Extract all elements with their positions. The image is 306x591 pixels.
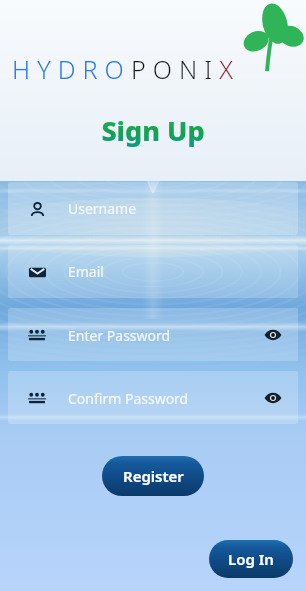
button[interactable]: Enter Password bbox=[8, 308, 298, 361]
staticText: Email bbox=[68, 262, 104, 281]
button[interactable]: Confirm Password bbox=[8, 371, 298, 424]
button[interactable]: Username bbox=[8, 182, 298, 235]
staticText: Sign Up bbox=[101, 112, 205, 149]
button[interactable]: Toggle password visibility bbox=[262, 324, 284, 346]
staticText: Username bbox=[68, 199, 137, 218]
staticText: Register bbox=[123, 466, 184, 486]
staticText: Enter Password bbox=[68, 326, 171, 345]
button[interactable]: Toggle password visibility bbox=[262, 387, 284, 409]
staticText: Confirm Password bbox=[68, 389, 189, 408]
staticText: H Y D R O P O N I X bbox=[12, 52, 234, 86]
button[interactable]: Email bbox=[8, 245, 298, 298]
button[interactable]: Register bbox=[102, 456, 204, 496]
button[interactable]: Log In bbox=[209, 540, 293, 578]
staticText: Log In bbox=[228, 549, 274, 569]
